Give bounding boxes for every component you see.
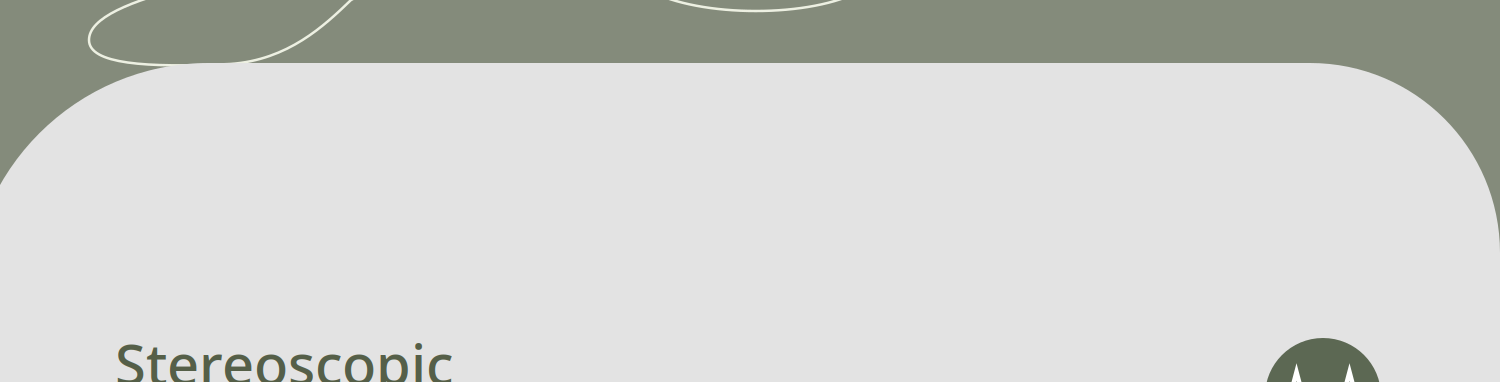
staticText: Stereoscopic bbox=[115, 326, 453, 382]
button[interactable]: Expand bbox=[1265, 338, 1381, 382]
